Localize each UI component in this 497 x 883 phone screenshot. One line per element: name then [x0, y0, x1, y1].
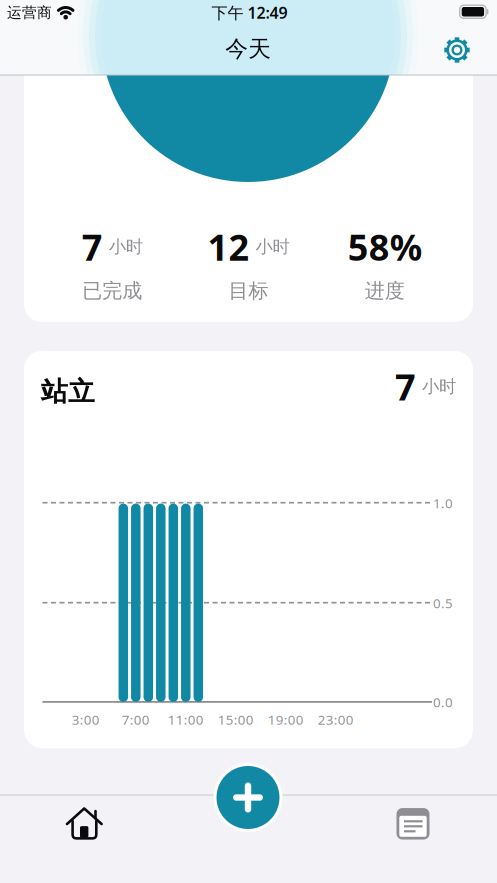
staticText: 目标 [228, 279, 268, 303]
staticText: 1.0 [433, 494, 453, 512]
staticText: 下午 12:49 [211, 2, 287, 23]
staticText: 小时 [422, 376, 456, 397]
staticText: 7:00 [122, 711, 150, 728]
button[interactable] [356, 794, 469, 853]
staticText: 7 [82, 223, 103, 271]
button[interactable] [213, 763, 282, 832]
button[interactable] [26, 793, 142, 855]
staticText: 11:00 [168, 711, 204, 728]
staticText: 12 [207, 223, 249, 271]
staticText: 0.5 [433, 594, 453, 612]
staticText: 进度 [365, 279, 405, 303]
staticText: 站立 [41, 375, 95, 408]
staticText: 0.0 [433, 693, 453, 711]
staticText: 7 [395, 363, 416, 410]
staticText: 23:00 [318, 711, 354, 728]
staticText: 19:00 [268, 711, 304, 728]
staticText: 小时 [109, 236, 143, 257]
staticText: 今天 [225, 35, 271, 63]
staticText: 已完成 [82, 279, 142, 303]
staticText: 3:00 [72, 711, 100, 728]
staticText: 15:00 [218, 711, 254, 728]
staticText: 小时 [255, 236, 289, 257]
button[interactable] [440, 33, 474, 67]
staticText: 58% [348, 223, 422, 271]
staticText: 运营商 [7, 3, 52, 21]
